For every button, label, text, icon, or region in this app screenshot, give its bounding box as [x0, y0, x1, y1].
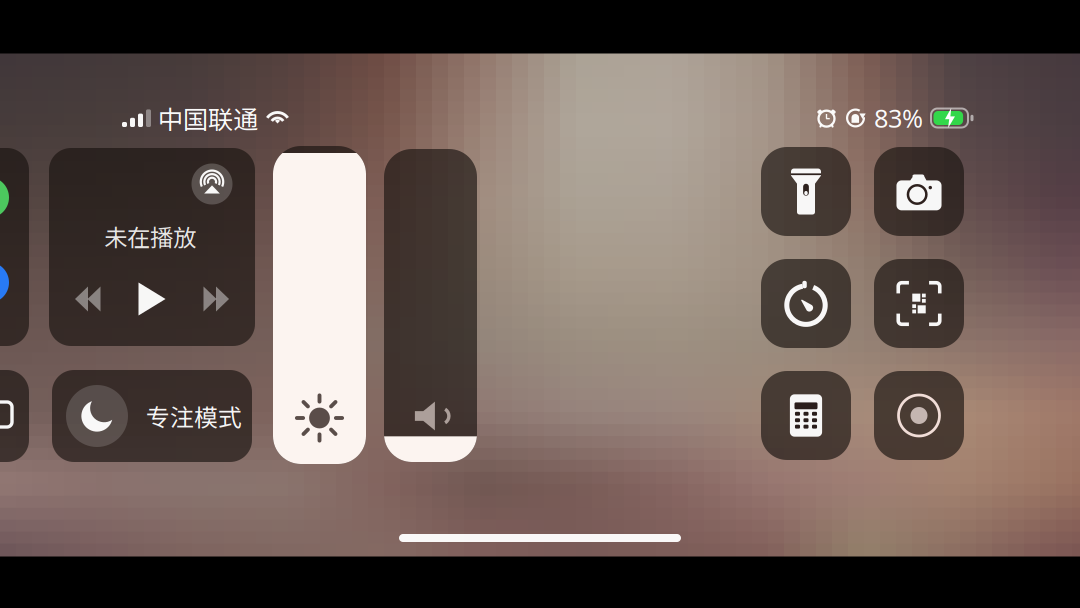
button[interactable]: Screen Recording — [874, 371, 964, 460]
button[interactable]: Scan QR Code — [874, 259, 964, 348]
button[interactable]: Flashlight — [761, 147, 851, 236]
staticText: 中国联通 — [158, 100, 258, 136]
button[interactable] — [273, 146, 366, 464]
staticText: 83% — [874, 101, 923, 135]
button[interactable]: Calculator — [761, 371, 851, 460]
button[interactable]: 专注模式 — [52, 370, 252, 462]
staticText: 专注模式 — [146, 399, 242, 433]
button[interactable]: Camera — [874, 147, 964, 236]
button[interactable]: 未在播放 — [49, 148, 255, 346]
staticText: 未在播放 — [104, 219, 196, 253]
button[interactable]: Timer — [761, 259, 851, 348]
button[interactable] — [384, 149, 477, 462]
